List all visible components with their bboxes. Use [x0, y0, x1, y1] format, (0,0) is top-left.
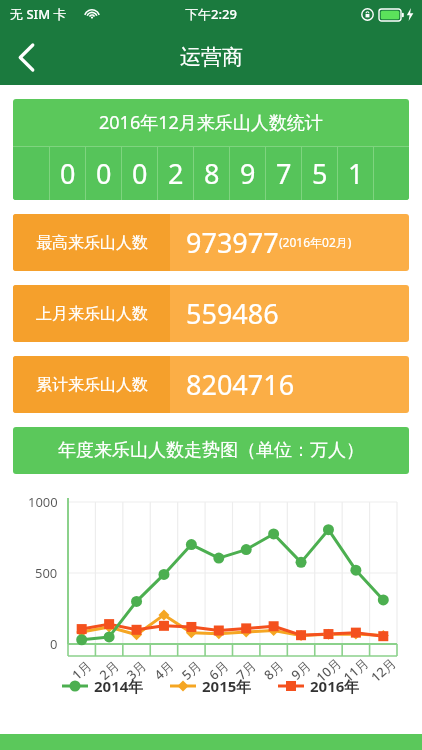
staticText: 下午2:29 — [185, 5, 237, 23]
staticText: 2 — [168, 155, 184, 192]
staticText: 559486 — [186, 295, 279, 332]
button[interactable]: Back — [0, 31, 52, 83]
staticText: 2016年 — [310, 676, 360, 696]
staticText: 5 — [312, 155, 328, 192]
staticText: 2015年 — [202, 676, 252, 696]
button[interactable]: 最高来乐山人数 — [13, 214, 409, 271]
button[interactable]: 2015年 — [170, 676, 252, 696]
staticText: 2016年12月来乐山人数统计 — [99, 110, 323, 135]
staticText: 8 — [204, 155, 220, 192]
staticText: 7 — [276, 155, 292, 192]
staticText: (2016年02月) — [279, 234, 352, 250]
staticText: 973977 — [186, 224, 279, 261]
staticText: 0 — [96, 155, 112, 192]
staticText: 无 SIM 卡 — [10, 5, 67, 23]
button[interactable]: 2016年 — [278, 676, 360, 696]
staticText: 累计来乐山人数 — [36, 375, 148, 395]
staticText: 最高来乐山人数 — [36, 233, 148, 253]
staticText: 1 — [348, 155, 364, 192]
staticText: 9 — [240, 155, 256, 192]
staticText: 8204716 — [186, 366, 295, 403]
button[interactable]: 累计来乐山人数 — [13, 356, 409, 413]
staticText: 运营商 — [180, 44, 243, 70]
button[interactable]: 年度来乐山人数走势图（单位：万人） — [13, 427, 409, 474]
button[interactable]: 上月来乐山人数 — [13, 285, 409, 342]
staticText: 2014年 — [94, 676, 144, 696]
button[interactable]: 2016年12月来乐山人数统计 — [13, 99, 409, 200]
staticText: 上月来乐山人数 — [36, 304, 148, 324]
staticText: 年度来乐山人数走势图（单位：万人） — [58, 439, 364, 462]
staticText: 0 — [132, 155, 148, 192]
staticText: 0 — [60, 155, 76, 192]
button[interactable]: 2014年 — [62, 676, 144, 696]
